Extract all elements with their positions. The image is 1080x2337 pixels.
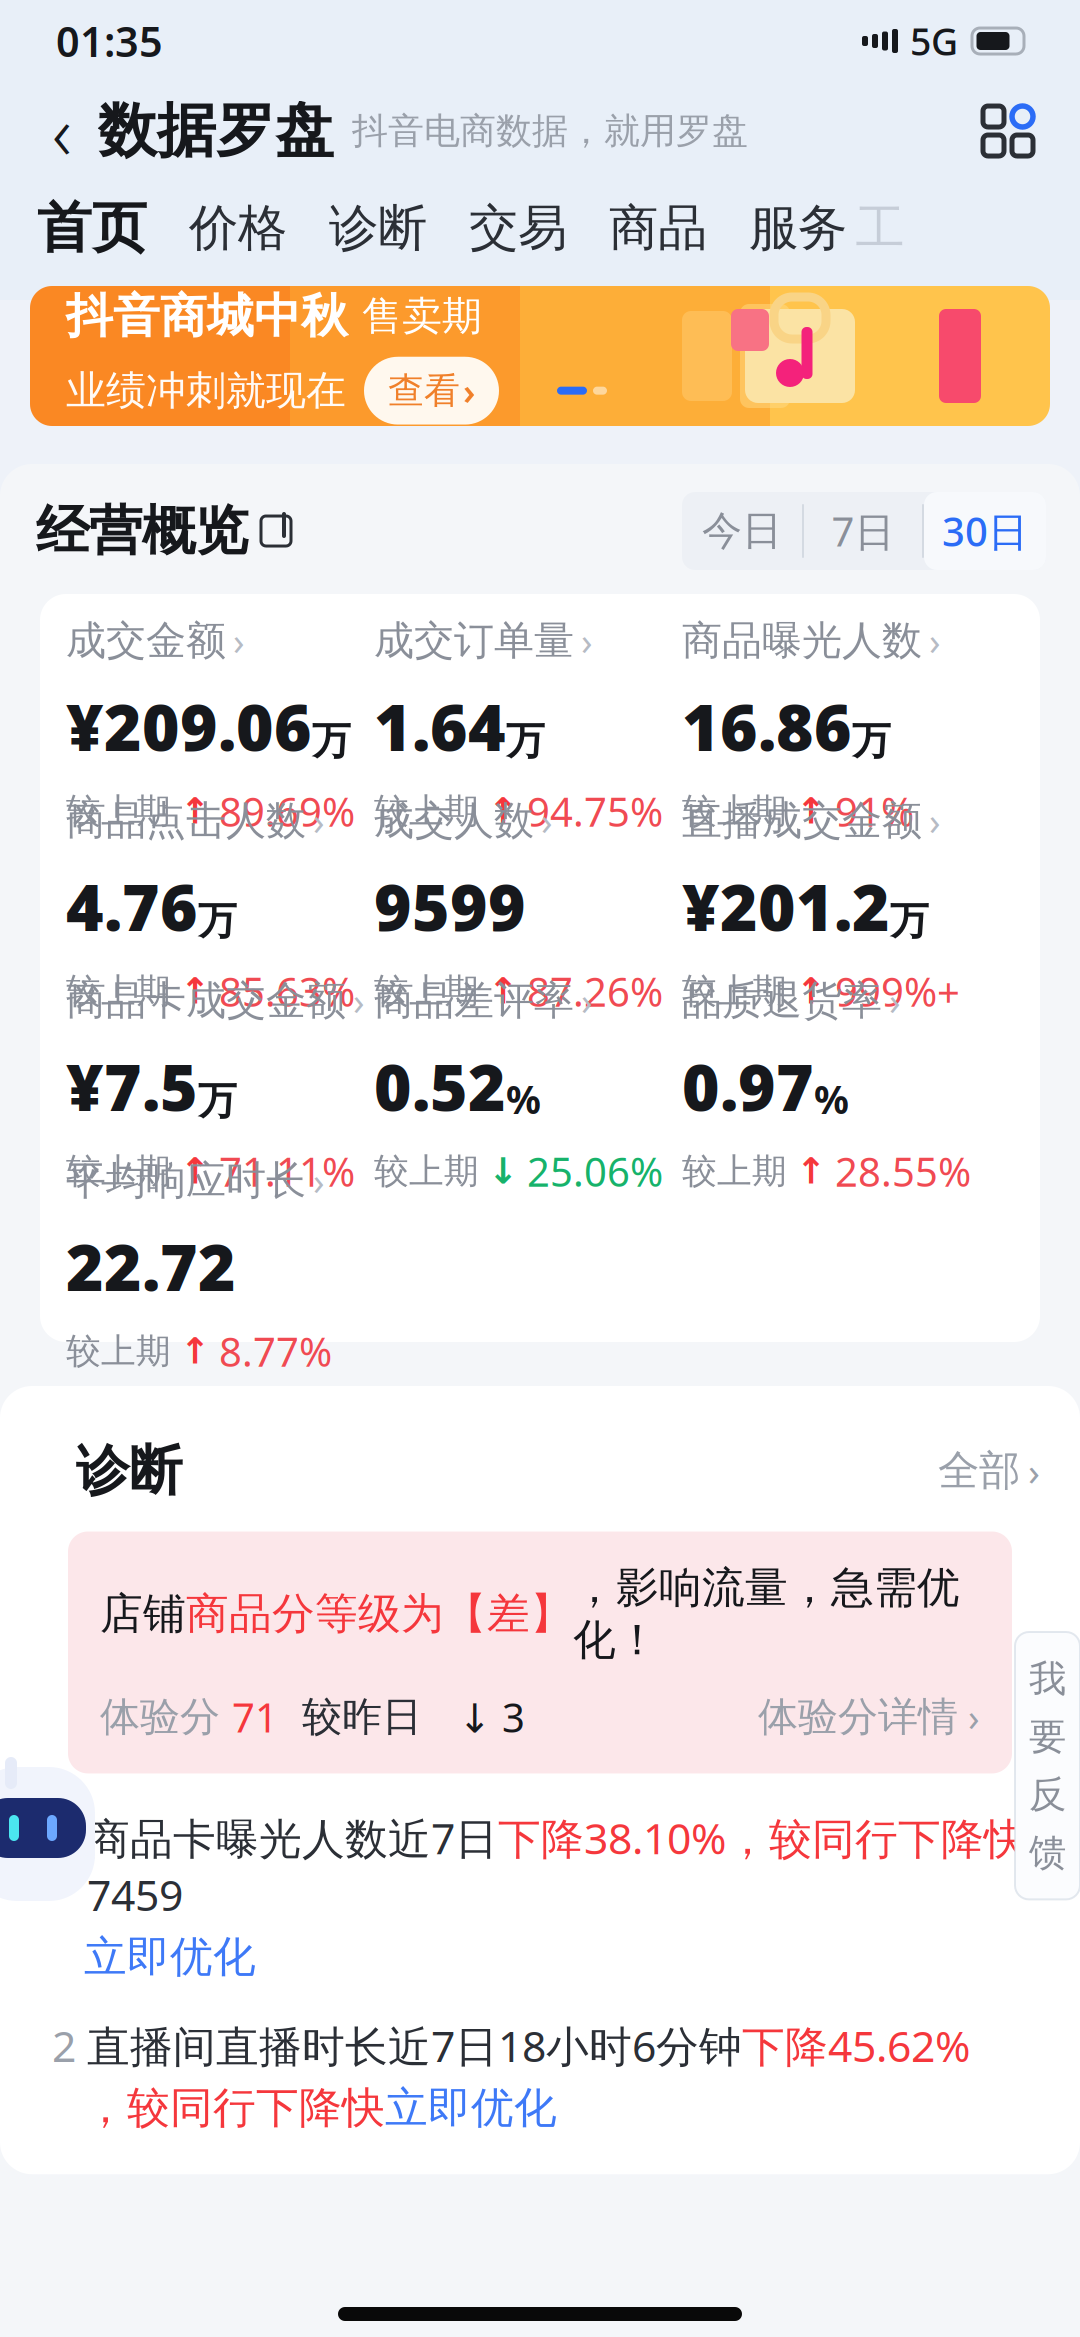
staticText: 直播间直播时长近7日18小时6分钟 [87, 2017, 742, 2074]
button[interactable]: 2 [52, 2017, 970, 2134]
button[interactable]: 功能面板 [970, 93, 1046, 169]
staticText: 较上期 [66, 1330, 171, 1372]
staticText: 9599 [374, 864, 526, 949]
staticText: 工 [855, 198, 904, 258]
button[interactable]: 商品 [588, 176, 728, 280]
staticText: › [958, 1692, 980, 1742]
staticText: 01:35 [56, 14, 163, 68]
staticText: 数据罗盘 [98, 95, 334, 167]
staticText: › [889, 976, 901, 1026]
staticText: 成交订单量 [374, 616, 574, 665]
staticText: ，影响流量，急需优化！ [573, 1561, 960, 1666]
staticText: ‹ [52, 81, 72, 181]
staticText: 较上期 [682, 1150, 787, 1192]
staticText: 立即优化 [385, 2082, 557, 2134]
staticText: ¥209.06 [66, 684, 312, 769]
staticText: ↑ [796, 1151, 826, 1192]
staticText: 94.75% [527, 785, 663, 838]
staticText: 1 [52, 1809, 87, 1866]
staticText: 业绩冲刺就现在 [66, 366, 346, 415]
button[interactable]: 抖音商城中秋售卖期，业绩冲刺就现在，查看 [0, 286, 1080, 426]
button[interactable]: 平均响应时长 [66, 1156, 374, 1328]
button[interactable]: 30日 [924, 492, 1046, 570]
staticText: 较上期 [374, 790, 479, 832]
button[interactable]: 商品点击人数 [66, 796, 374, 968]
button[interactable]: 我要反馈 [1015, 1632, 1080, 1899]
button[interactable]: 7日 [804, 492, 922, 570]
staticText: 抖音商城中秋 [66, 287, 348, 345]
button[interactable]: 1 [52, 1809, 1027, 1983]
staticText: 体验分 [100, 1692, 232, 1741]
staticText: 店铺 [100, 1588, 186, 1640]
staticText: 抖音电商数据，就用罗盘 [352, 109, 748, 153]
staticText: 万 [890, 897, 929, 945]
staticText: 商品 [609, 198, 707, 258]
staticText: 5G [910, 16, 958, 66]
staticText: 直播成交金额 [682, 796, 922, 845]
staticText: 诊断 [76, 1438, 182, 1503]
staticText: › [1028, 1445, 1040, 1496]
staticText: 体验分详情 [758, 1692, 958, 1741]
staticText: 71 [232, 1690, 278, 1743]
staticText: 89.69% [219, 785, 355, 838]
button[interactable]: 今日 [682, 492, 802, 570]
staticText: ¥201.2 [682, 864, 890, 949]
staticText: 诊断 [329, 198, 427, 258]
staticText: › [313, 1156, 325, 1206]
staticText: 我 [1029, 1656, 1066, 1702]
button[interactable]: 服务 [728, 176, 868, 280]
staticText: 商品差评率 [374, 976, 574, 1025]
button[interactable]: 返回 [34, 96, 90, 166]
button[interactable]: 交易 [448, 176, 588, 280]
staticText: 商品卡成交金额 [66, 976, 346, 1025]
staticText: ↑ [796, 971, 826, 1012]
button[interactable]: 商品差评率 [374, 976, 682, 1148]
button[interactable]: 成交人数 [374, 796, 682, 968]
staticText: 2 [52, 2017, 87, 2074]
staticText: ↑ [488, 971, 518, 1012]
staticText: 7日 [831, 504, 894, 557]
staticText: 下降45.62% [742, 2017, 970, 2074]
button[interactable]: 全部 [938, 1445, 1040, 1496]
button[interactable]: 成交金额 [66, 616, 374, 788]
staticText: 查看 [388, 369, 460, 413]
staticText: 商品卡曝光人数近7日7459 [87, 1809, 498, 1923]
staticText: 91% [835, 785, 914, 838]
button[interactable]: 诊断 [308, 176, 448, 280]
staticText: 成交人数 [374, 796, 534, 845]
staticText: 71.11% [219, 1145, 355, 1198]
staticText: › [929, 616, 941, 666]
staticText: › [353, 976, 365, 1026]
staticText: 万 [506, 717, 545, 765]
staticText: % [814, 1073, 849, 1124]
button[interactable]: 直播成交金额 [682, 796, 990, 968]
staticText: 较上期 [682, 790, 787, 832]
staticText: 85.63% [219, 965, 355, 1018]
button[interactable]: 编辑指标 [248, 503, 304, 559]
staticText: 商品分等级为【差】 [186, 1588, 573, 1640]
staticText: 今日 [702, 506, 782, 555]
button[interactable]: 首页 [16, 176, 168, 280]
staticText: 较上期 [374, 970, 479, 1012]
staticText: 25.06% [527, 1145, 663, 1198]
button[interactable]: 商品卡成交金额 [66, 976, 374, 1148]
staticText: ↑ [180, 1151, 210, 1192]
button[interactable]: 品质退货率 [682, 976, 990, 1148]
staticText: › [581, 616, 593, 666]
button[interactable]: 店铺商品分等级为【差】，体验分详情 [68, 1531, 1012, 1773]
staticText: 商品曝光人数 [682, 616, 922, 665]
staticText: 1.64 [374, 684, 506, 769]
button[interactable]: 商品曝光人数 [682, 616, 990, 788]
staticText: 较上期 [66, 970, 171, 1012]
staticText: ，较同行下降快 [84, 2082, 385, 2134]
staticText: 16.86 [682, 684, 852, 769]
staticText: 全部 [938, 1445, 1020, 1496]
staticText: 馈 [1029, 1830, 1066, 1875]
staticText: ↑ [180, 791, 210, 832]
staticText: 经营概览 [36, 498, 248, 564]
staticText: 较上期 [66, 1150, 171, 1192]
staticText: › [929, 796, 941, 846]
button[interactable]: 成交订单量 [374, 616, 682, 788]
staticText: 8.77% [219, 1325, 332, 1378]
button[interactable]: 价格 [168, 176, 308, 280]
